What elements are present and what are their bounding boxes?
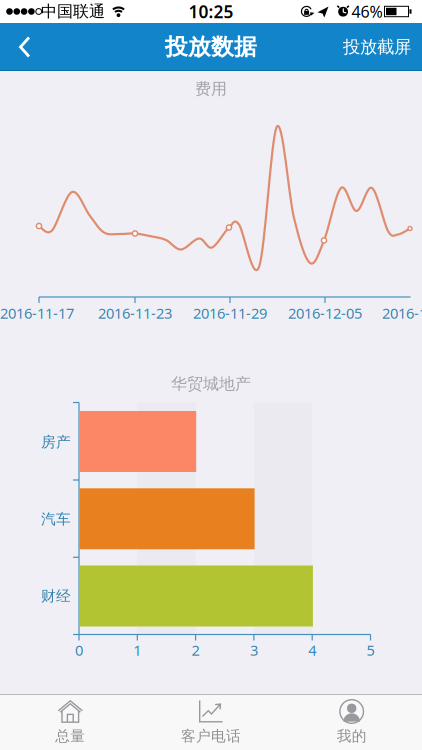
staticText: 汽车 (41, 510, 71, 528)
staticText: 2 (192, 640, 200, 660)
staticText: 中国联通 (41, 2, 105, 21)
staticText: 10:25 (188, 0, 233, 23)
staticText: 我的 (337, 727, 367, 745)
staticText: 总量 (55, 727, 85, 745)
staticText: 1 (133, 640, 141, 660)
staticText: 华贸城地产 (171, 374, 251, 394)
staticText: 房产 (41, 433, 71, 451)
staticText: 2016-12-05 (288, 303, 362, 323)
staticText: 46% (351, 1, 382, 22)
staticText: 5 (367, 640, 375, 660)
staticText: 客户电话 (181, 727, 241, 745)
staticText: 2016-11-29 (193, 303, 267, 323)
button[interactable]: Back (0, 23, 44, 71)
button[interactable]: 投放截屏 (337, 23, 417, 71)
staticText: 2016-12-11 (382, 303, 422, 323)
staticText: 投放截屏 (343, 36, 411, 58)
staticText: 财经 (41, 587, 71, 605)
staticText: 4 (308, 640, 316, 660)
staticText: 费用 (195, 79, 227, 99)
staticText: 2016-11-23 (98, 303, 172, 323)
button[interactable]: 客户电话 (141, 695, 281, 749)
staticText: 2016-11-17 (0, 303, 74, 323)
staticText: 投放数据 (165, 33, 257, 61)
button[interactable]: 我的 (282, 695, 422, 749)
staticText: 3 (250, 640, 258, 660)
button[interactable]: 总量 (0, 695, 140, 749)
staticText: 0 (75, 640, 83, 660)
